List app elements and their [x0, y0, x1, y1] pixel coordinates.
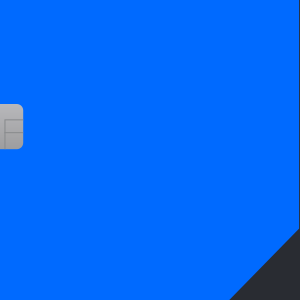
- button[interactable]: Payment card: [0, 0, 300, 300]
